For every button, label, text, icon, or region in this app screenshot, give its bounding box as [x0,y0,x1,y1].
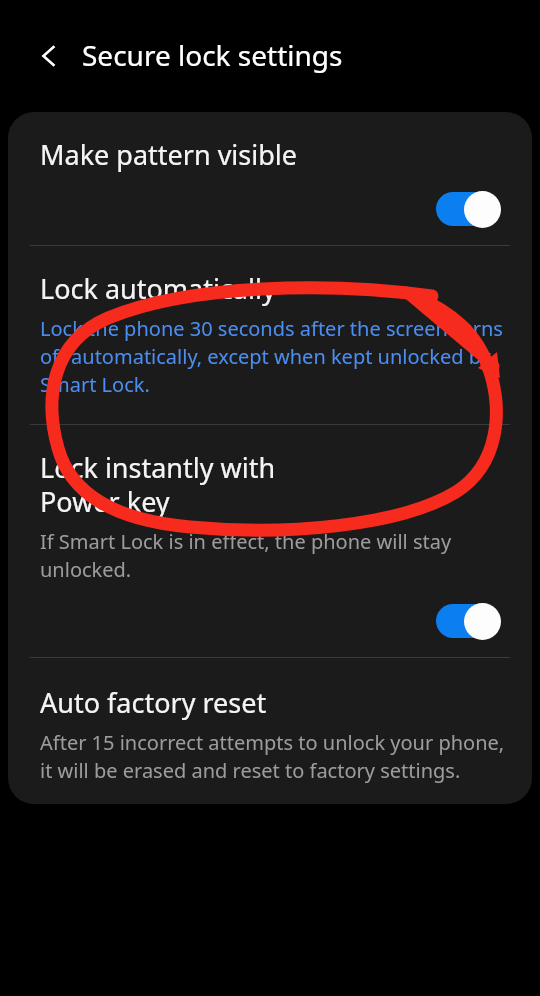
staticText: Lock instantly with Power key [40,449,276,520]
staticText: Secure lock settings [82,36,343,74]
button[interactable]: Make pattern visible [8,112,532,245]
button[interactable]: Toggle [434,189,506,229]
staticText: Lock the phone 30 seconds after the scre… [40,315,506,398]
staticText: Make pattern visible [40,136,298,173]
button[interactable]: Toggle [434,601,506,641]
button[interactable]: Back [26,33,72,79]
staticText: Lock automatically [40,270,276,307]
staticText: Auto factory reset [40,684,267,721]
button[interactable]: Lock automatically [8,246,532,424]
button[interactable]: Lock instantly with Power key [8,425,532,657]
button[interactable]: Auto factory reset [8,658,532,804]
staticText: After 15 incorrect attempts to unlock yo… [40,729,506,784]
staticText: If Smart Lock is in effect, the phone wi… [40,528,506,583]
